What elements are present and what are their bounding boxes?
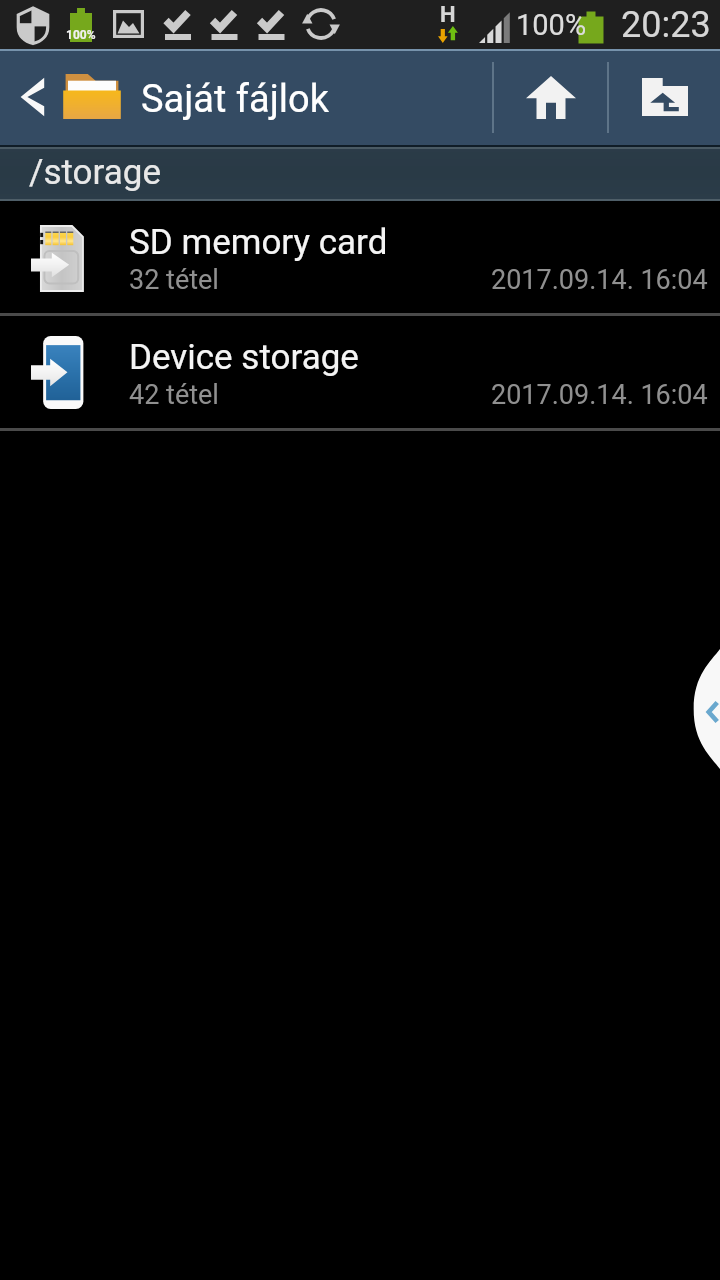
staticText: H <box>440 2 456 28</box>
staticText: /storage <box>29 152 162 193</box>
staticText: 2017.09.14. 16:04 <box>491 264 708 296</box>
button[interactable]: Open side panel <box>692 649 720 769</box>
staticText: SD memory card <box>129 222 388 263</box>
staticText: 20:23 <box>621 4 711 46</box>
button[interactable]: Device storage <box>0 316 720 428</box>
button[interactable]: SD memory card <box>0 201 720 313</box>
button[interactable] <box>0 145 720 201</box>
staticText: Saját fájlok <box>141 77 329 122</box>
staticText: 32 tétel <box>129 264 219 296</box>
staticText: 100% <box>516 8 587 42</box>
staticText: Device storage <box>129 337 359 378</box>
button[interactable]: Back <box>0 49 58 145</box>
staticText: 42 tétel <box>129 379 219 411</box>
button[interactable]: Home <box>494 49 607 145</box>
staticText: 2017.09.14. 16:04 <box>491 379 708 411</box>
staticText: 100% <box>66 28 96 42</box>
button[interactable]: Up one level <box>609 49 720 145</box>
